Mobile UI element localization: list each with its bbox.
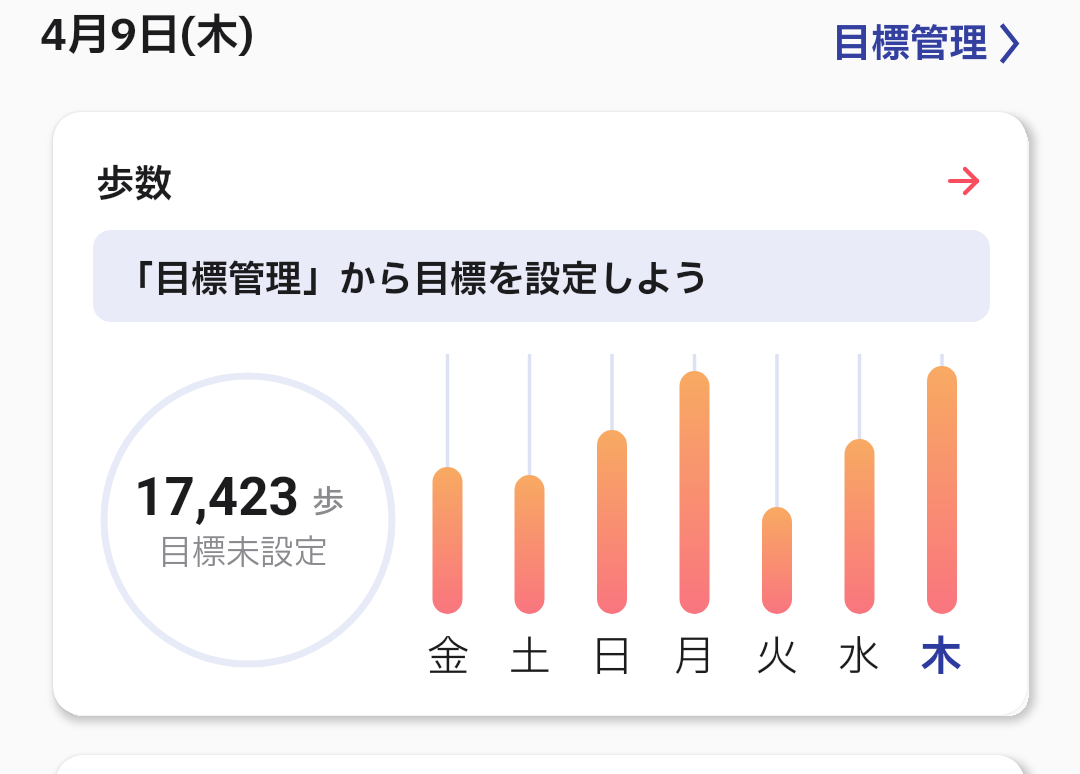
button[interactable]: 歩数 <box>53 112 1027 715</box>
staticText: 火 <box>756 626 799 684</box>
staticText: 目標未設定 <box>158 528 328 579</box>
button[interactable]: 「目標管理」から目標を設定しよう <box>93 230 990 322</box>
staticText: 月 <box>673 626 716 684</box>
staticText: 金 <box>427 626 470 684</box>
staticText: 土 <box>509 626 552 684</box>
button[interactable] <box>934 151 994 211</box>
staticText: 日 <box>591 626 634 684</box>
staticText: 4月9日(木) <box>40 4 254 68</box>
staticText: 目標管理 <box>832 16 989 74</box>
staticText: 歩数 <box>96 157 173 214</box>
staticText: 木 <box>920 626 963 684</box>
staticText: 歩 <box>312 479 345 527</box>
button[interactable]: 目標管理 <box>822 6 1027 68</box>
staticText: 「目標管理」から目標を設定しよう <box>117 253 709 308</box>
staticText: 17,423 <box>134 466 300 528</box>
staticText: 水 <box>838 626 881 684</box>
